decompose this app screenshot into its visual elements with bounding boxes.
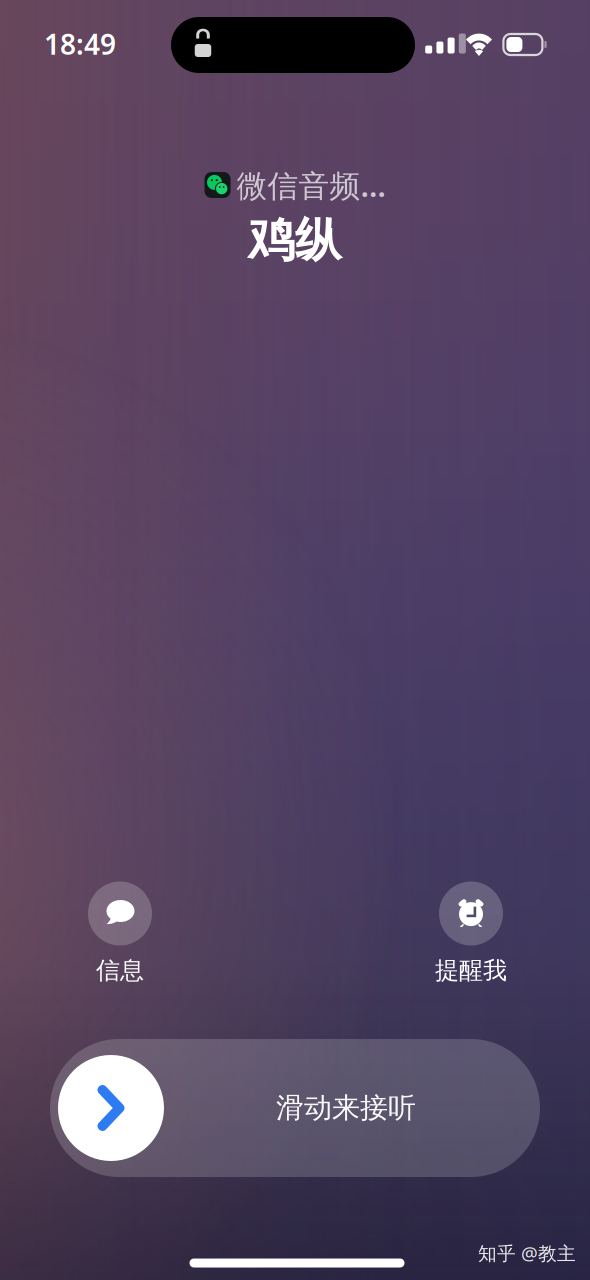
staticText: 信息 [96, 956, 144, 985]
staticText: 18:49 [44, 25, 116, 63]
staticText: 鸡纵 [248, 211, 342, 269]
button[interactable]: 信息 [60, 881, 180, 982]
staticText: 提醒我 [435, 956, 507, 985]
button[interactable]: 提醒我 [411, 881, 531, 982]
staticText: 微信音频… [236, 165, 385, 205]
staticText: 知乎 @教主 [478, 1241, 576, 1265]
button[interactable]: 滑动来接听 [50, 1039, 540, 1177]
staticText: 滑动来接听 [276, 1091, 416, 1125]
